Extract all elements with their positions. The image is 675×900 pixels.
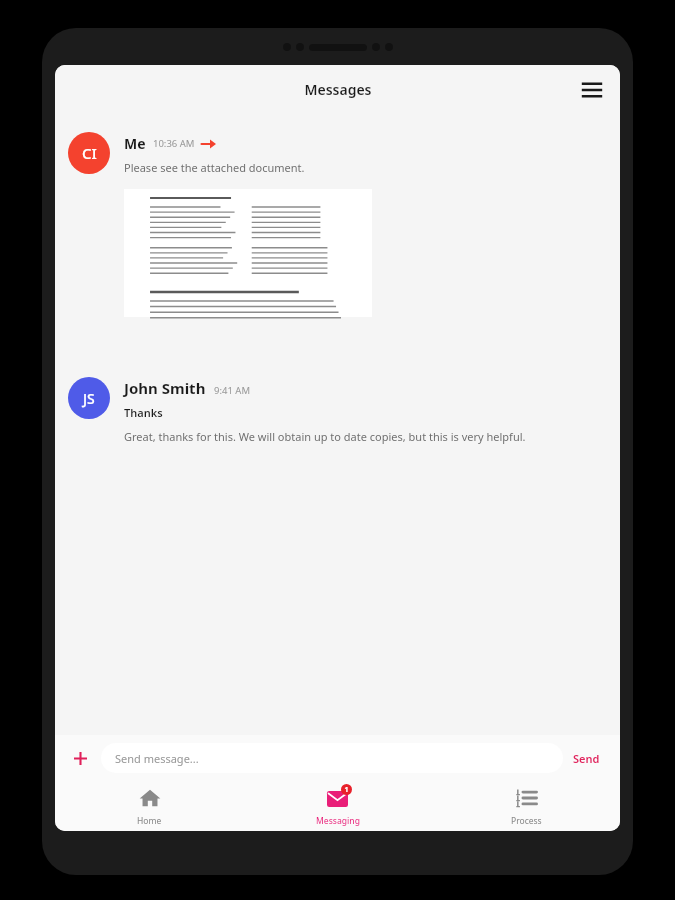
button[interactable]: Send message... (101, 743, 563, 773)
staticText: Send message... (115, 751, 199, 766)
staticText: JS (83, 389, 95, 408)
button[interactable]: Menu (574, 72, 610, 108)
staticText: Send (573, 751, 600, 766)
button[interactable]: Send (563, 745, 610, 772)
staticText: Process (511, 815, 542, 827)
staticText: Messaging (316, 815, 360, 827)
button[interactable]: 1 (244, 781, 432, 831)
button[interactable]: Attached document (124, 189, 372, 317)
staticText: 1 (344, 785, 349, 795)
staticText: Thanks (124, 405, 163, 420)
button[interactable]: Process (432, 781, 620, 831)
button[interactable]: Avatar JS (68, 377, 110, 419)
staticText: Me (124, 134, 146, 153)
button[interactable]: Avatar CI (68, 132, 110, 174)
staticText: John Smith (124, 378, 206, 398)
staticText: Great, thanks for this. We will obtain u… (124, 429, 526, 444)
staticText: Home (137, 815, 162, 827)
staticText: Messages (304, 80, 372, 99)
button[interactable]: Add attachment (65, 743, 95, 773)
staticText: 10:36 AM (153, 137, 195, 150)
staticText: CI (82, 143, 97, 163)
staticText: 9:41 AM (214, 384, 251, 397)
staticText: Please see the attached document. (124, 160, 305, 175)
button[interactable]: Home (55, 781, 244, 831)
